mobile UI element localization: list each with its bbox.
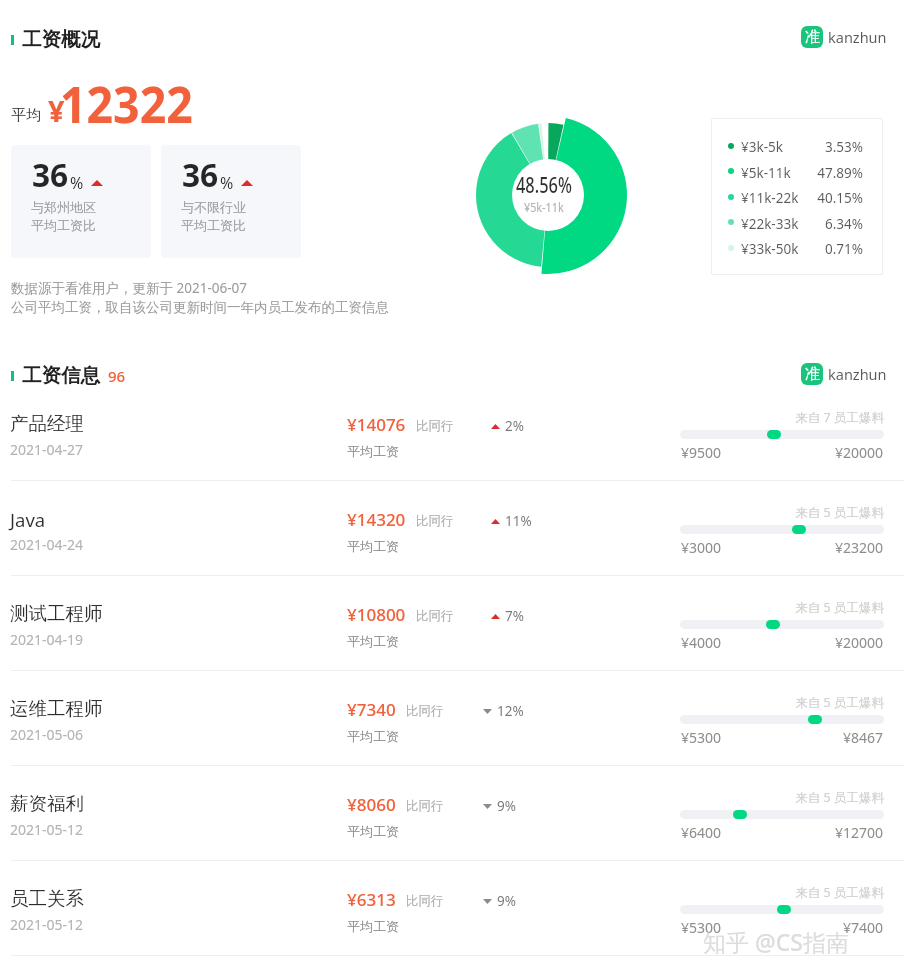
staticText: Java: [10, 507, 46, 532]
staticText: ¥5k-11k: [524, 198, 564, 216]
staticText: 2021-05-12: [10, 820, 84, 839]
staticText: ¥7340: [347, 698, 396, 721]
staticText: 比同行: [406, 703, 444, 719]
button[interactable]: 员工关系: [0, 869, 904, 964]
staticText: 11%: [505, 512, 532, 530]
staticText: 来自 7 员工爆料: [680, 409, 884, 426]
button[interactable]: 36: [161, 145, 301, 258]
staticText: 来自 5 员工爆料: [680, 504, 884, 521]
staticText: 2%: [505, 417, 524, 435]
staticText: 与不限行业: [181, 199, 246, 215]
staticText: 2021-04-24: [10, 535, 84, 554]
staticText: 47.89%: [803, 164, 863, 182]
staticText: 2021-05-06: [10, 725, 84, 744]
staticText: 平均工资: [347, 728, 399, 744]
staticText: ¥12700: [782, 823, 883, 842]
staticText: ¥8467: [782, 728, 883, 747]
staticText: ¥5300: [681, 728, 722, 747]
staticText: 36: [182, 152, 218, 197]
staticText: ¥5k-11k: [741, 164, 791, 182]
staticText: 3.53%: [803, 138, 863, 156]
staticText: 平均工资比: [31, 217, 96, 233]
staticText: ¥23200: [782, 538, 883, 557]
staticText: ¥33k-50k: [741, 240, 799, 258]
staticText: 平均工资: [347, 443, 399, 459]
staticText: 比同行: [406, 798, 444, 814]
staticText: 96: [108, 366, 126, 386]
staticText: ¥14076: [347, 413, 406, 436]
staticText: ¥6313: [347, 888, 396, 911]
staticText: ¥6400: [681, 823, 722, 842]
staticText: 36: [32, 152, 68, 197]
staticText: 准: [805, 28, 820, 47]
staticText: ¥3k-5k: [741, 138, 783, 156]
staticText: 2021-05-12: [10, 915, 84, 934]
staticText: 来自 5 员工爆料: [680, 789, 884, 806]
staticText: 产品经理: [10, 412, 84, 435]
staticText: 工资信息: [22, 363, 100, 388]
staticText: 与郑州地区: [31, 199, 96, 215]
staticText: 来自 5 员工爆料: [680, 599, 884, 616]
staticText: ¥4000: [681, 633, 722, 652]
staticText: 40.15%: [803, 189, 863, 207]
staticText: 9%: [497, 797, 516, 815]
staticText: 比同行: [416, 608, 454, 624]
staticText: 7%: [505, 607, 524, 625]
staticText: 平均工资比: [181, 217, 246, 233]
staticText: 12%: [497, 702, 524, 720]
button[interactable]: 产品经理: [0, 394, 904, 489]
staticText: 12322: [60, 68, 193, 137]
staticText: 6.34%: [803, 215, 863, 233]
staticText: kanzhun: [828, 27, 887, 47]
staticText: 2021-04-19: [10, 630, 84, 649]
staticText: 知乎 @CS指南: [703, 926, 849, 957]
staticText: 比同行: [406, 893, 444, 909]
staticText: 准: [805, 365, 820, 384]
staticText: %: [220, 172, 234, 194]
staticText: ¥20000: [782, 443, 883, 462]
staticText: 工资概况: [22, 27, 100, 52]
staticText: 比同行: [416, 513, 454, 529]
button[interactable]: 测试工程师: [0, 584, 904, 679]
staticText: ¥3000: [681, 538, 722, 557]
staticText: 来自 5 员工爆料: [680, 694, 884, 711]
staticText: 公司平均工资，取自该公司更新时间一年内员工发布的工资信息: [11, 299, 389, 316]
staticText: 48.56%: [516, 171, 572, 200]
staticText: 薪资福利: [10, 792, 84, 815]
staticText: ¥22k-33k: [741, 215, 799, 233]
staticText: kanzhun: [828, 364, 887, 384]
staticText: 来自 5 员工爆料: [680, 884, 884, 901]
staticText: ¥9500: [681, 443, 722, 462]
staticText: 运维工程师: [10, 697, 103, 720]
staticText: %: [70, 172, 84, 194]
button[interactable]: Java: [0, 489, 904, 584]
staticText: 2021-04-27: [10, 440, 84, 459]
staticText: 平均工资: [347, 633, 399, 649]
staticText: ¥8060: [347, 793, 396, 816]
button[interactable]: 运维工程师: [0, 679, 904, 774]
staticText: 平均工资: [347, 538, 399, 554]
staticText: ¥5300: [681, 918, 722, 937]
staticText: ¥11k-22k: [741, 189, 799, 207]
staticText: ¥14320: [347, 508, 406, 531]
staticText: 平均工资: [347, 823, 399, 839]
staticText: 比同行: [416, 418, 454, 434]
button[interactable]: 薪资福利: [0, 774, 904, 869]
staticText: 数据源于看准用户，更新于 2021-06-07: [11, 279, 247, 297]
staticText: 平均: [11, 106, 41, 125]
staticText: 9%: [497, 892, 516, 910]
button[interactable]: kanzhun: [801, 363, 887, 385]
button[interactable]: kanzhun: [801, 26, 887, 48]
staticText: 0.71%: [803, 240, 863, 258]
staticText: ¥7400: [782, 918, 883, 937]
staticText: ¥20000: [782, 633, 883, 652]
staticText: 平均工资: [347, 918, 399, 934]
staticText: ¥: [48, 91, 65, 130]
staticText: 员工关系: [10, 887, 84, 910]
button[interactable]: 36: [11, 145, 151, 258]
staticText: 测试工程师: [10, 602, 103, 625]
staticText: ¥10800: [347, 603, 406, 626]
